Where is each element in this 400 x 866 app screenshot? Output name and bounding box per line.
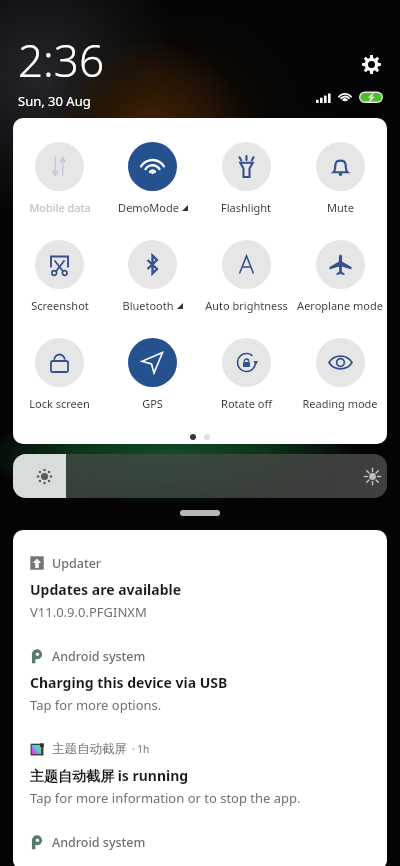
staticText: Bluetooth [122,298,174,313]
staticText: Reading mode [302,396,378,411]
button[interactable]: Auto brightness [199,240,293,313]
button[interactable]: Lock screen [13,338,106,411]
button[interactable]: 主题自动截屏 [13,741,387,834]
staticText: Android system [52,648,146,664]
staticText: Mobile data [29,200,91,215]
staticText: Rotate off [221,396,272,411]
staticText: Tap for more options. [30,696,162,714]
staticText: Aeroplane mode [297,298,383,313]
button[interactable]: Screenshot [13,240,106,313]
staticText: Tap for more information or to stop the … [30,789,301,807]
staticText: Mute [327,200,354,215]
button[interactable]: Rotate off [199,338,293,411]
staticText: 2:36 [18,30,105,90]
button[interactable]: DemoMode [106,142,199,215]
button[interactable]: Android system [13,648,387,741]
staticText: GPS [142,396,163,411]
staticText: Flashlight [221,200,271,215]
staticText: Android system [52,834,146,850]
staticText: · 1h [132,742,150,756]
staticText: Updates are available [30,580,182,599]
staticText: Auto brightness [205,298,288,313]
staticText: Lock screen [29,396,90,411]
button[interactable]: Mute [293,142,387,215]
staticText: 主题自动截屏 is running [30,766,189,785]
staticText: 主题自动截屏 [52,741,127,757]
staticText: Charging this device via USB [30,673,228,692]
staticText: Updater [52,555,102,571]
staticText: V11.0.9.0.PFGINXM [30,603,147,621]
staticText: Screenshot [31,298,89,313]
button[interactable]: Reading mode [293,338,387,411]
staticText: DemoMode [118,200,179,215]
button[interactable]: Bluetooth [106,240,199,313]
button[interactable]: Flashlight [199,142,293,215]
button[interactable]: Brightness [13,454,387,498]
button[interactable]: GPS [106,338,199,411]
staticText: Sun, 30 Aug [18,92,91,110]
button[interactable]: Settings [357,50,386,79]
button[interactable]: Aeroplane mode [293,240,387,313]
button[interactable]: Updater [13,555,387,648]
button[interactable]: Android system [13,834,387,866]
button[interactable]: Mobile data [13,142,106,215]
